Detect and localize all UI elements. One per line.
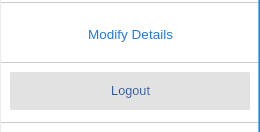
staticText: Logout [111, 84, 150, 98]
staticText: Modify Details [88, 27, 173, 42]
button[interactable]: Logout [10, 72, 250, 110]
button[interactable]: Modify Details [0, 3, 260, 62]
